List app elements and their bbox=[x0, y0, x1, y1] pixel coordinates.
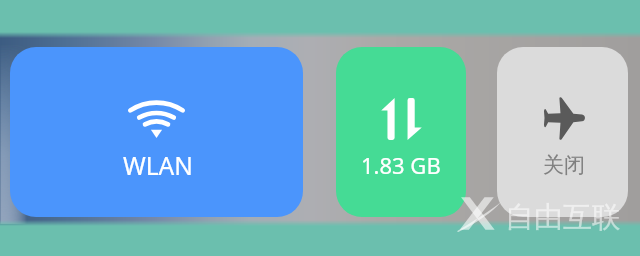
staticText: 自由互联 bbox=[505, 199, 621, 236]
staticText: 1.83 GB bbox=[361, 150, 441, 180]
button[interactable]: 关闭 bbox=[497, 47, 628, 217]
button[interactable]: WLAN bbox=[10, 47, 303, 217]
staticText: 关闭 bbox=[543, 152, 585, 178]
staticText: WLAN bbox=[123, 149, 193, 182]
button[interactable]: 1.83 GB bbox=[336, 47, 466, 217]
